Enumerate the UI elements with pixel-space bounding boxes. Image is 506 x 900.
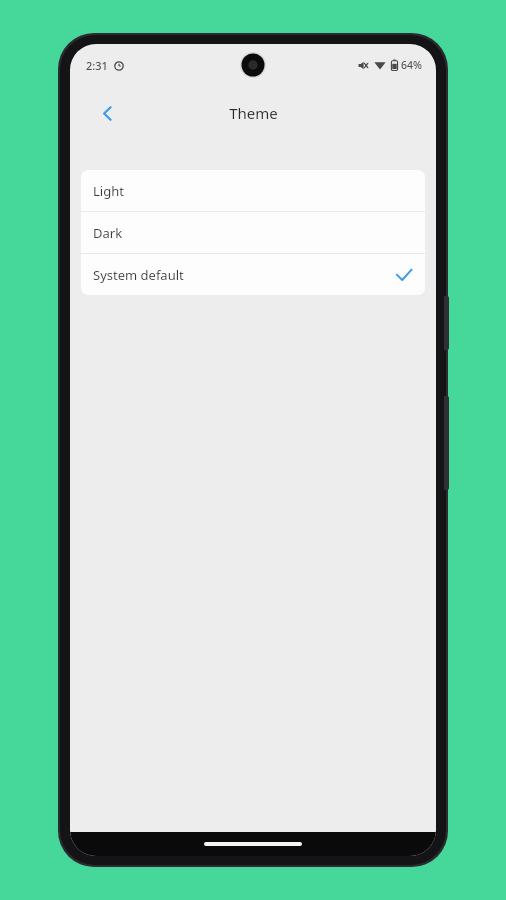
button[interactable]: Dark	[81, 212, 425, 253]
button[interactable]: Light	[81, 170, 425, 211]
staticText: 2:31	[86, 58, 108, 73]
staticText: 64%	[401, 58, 422, 72]
staticText: Light	[93, 182, 413, 200]
staticText: Dark	[93, 224, 413, 242]
staticText: System default	[93, 266, 395, 284]
button[interactable]: System default	[81, 254, 425, 295]
button[interactable]: Back	[90, 96, 124, 130]
staticText: Theme	[229, 103, 278, 123]
